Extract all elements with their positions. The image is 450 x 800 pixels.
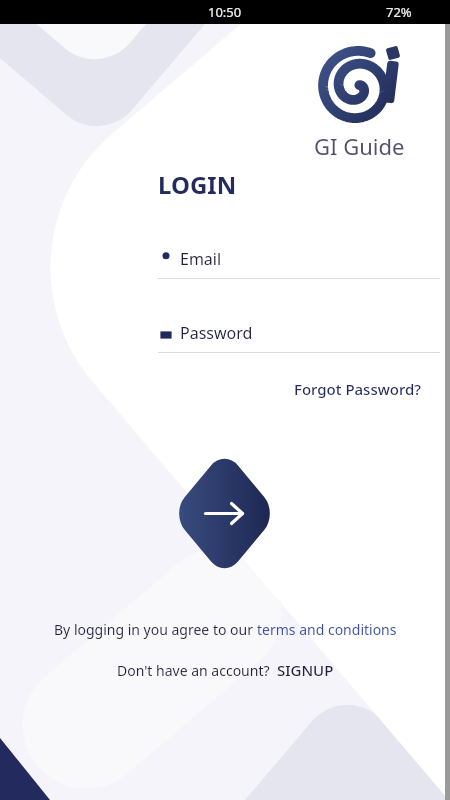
staticText: SIGNUP bbox=[277, 660, 334, 680]
staticText: Forgot Password? bbox=[294, 379, 422, 399]
staticText: Don't have an account? bbox=[117, 661, 277, 680]
button[interactable]: Login bbox=[171, 449, 278, 578]
staticText: 72% bbox=[386, 3, 412, 21]
button[interactable]: Forgot Password? bbox=[290, 375, 426, 403]
button[interactable]: terms and conditions bbox=[257, 620, 397, 639]
staticText: Password bbox=[180, 322, 253, 344]
staticText: terms and conditions bbox=[257, 620, 397, 639]
staticText: GI Guide bbox=[314, 131, 405, 161]
staticText: Email bbox=[180, 248, 222, 270]
staticText: 10:50 bbox=[208, 3, 242, 21]
staticText: By logging in you agree to our bbox=[54, 620, 257, 639]
button[interactable]: SIGNUP bbox=[277, 660, 334, 680]
staticText: LOGIN bbox=[158, 168, 237, 201]
